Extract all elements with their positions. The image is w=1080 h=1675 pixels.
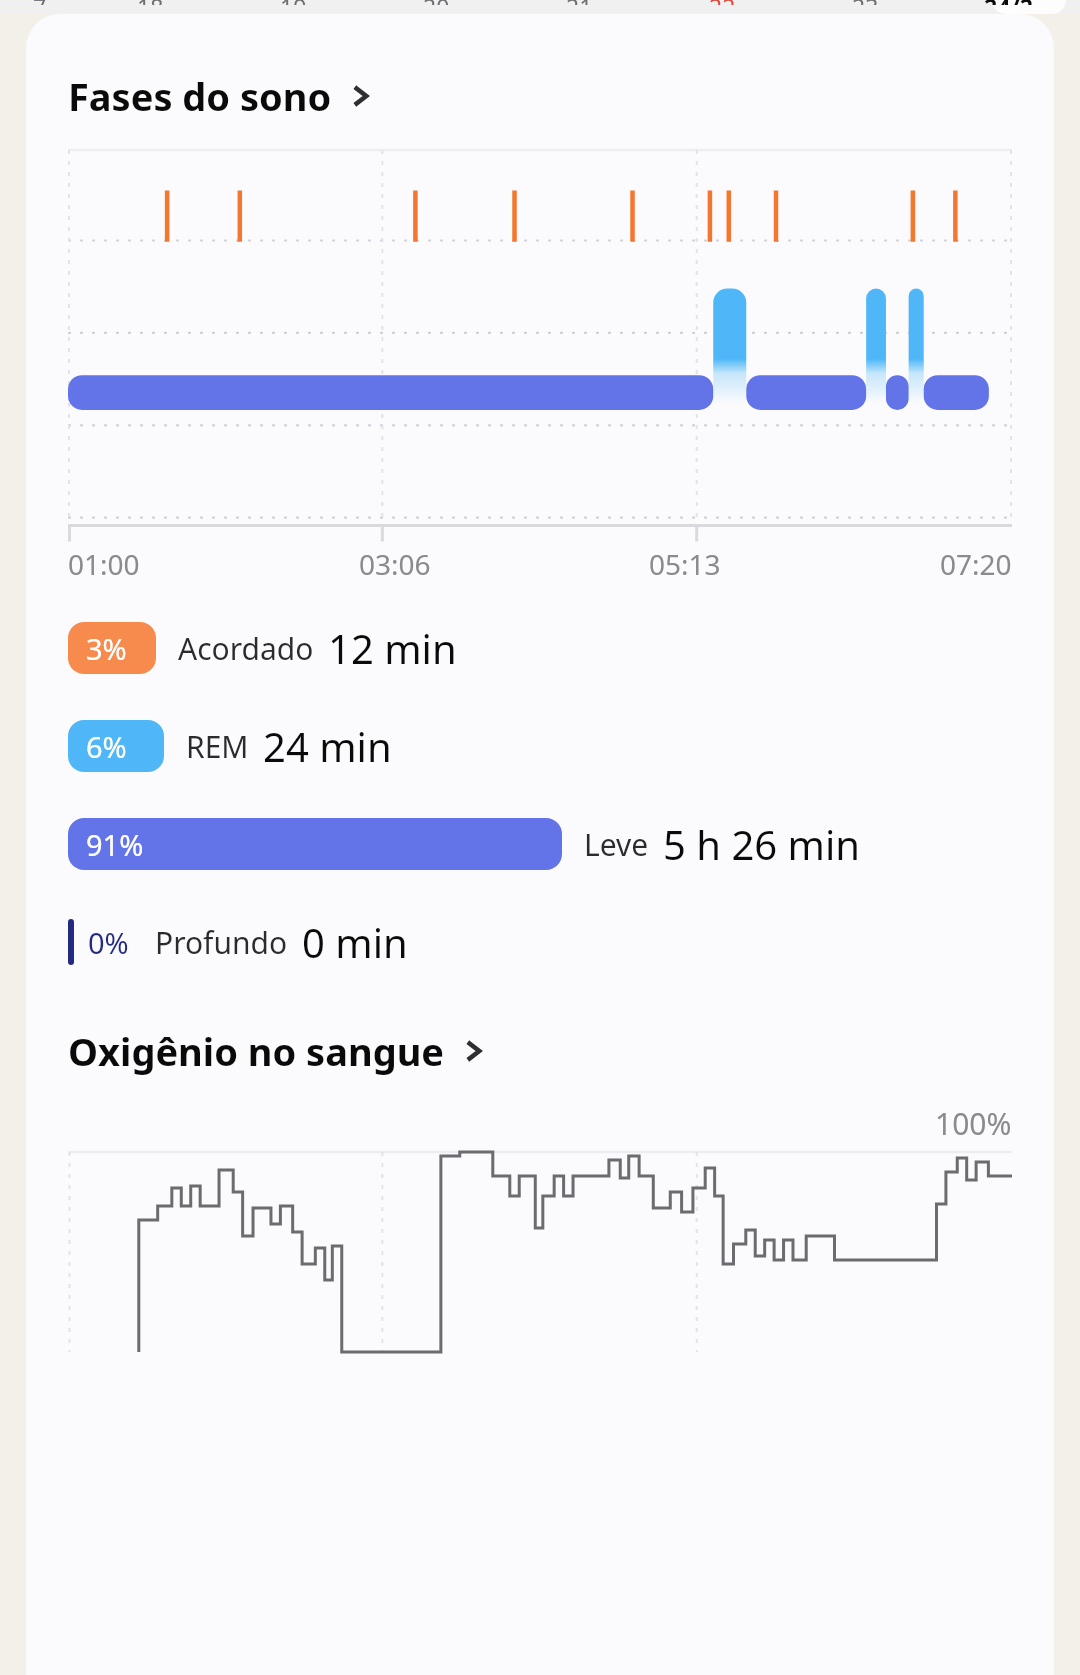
staticText: 07:20 — [940, 545, 1012, 583]
staticText: 01:00 — [68, 545, 140, 583]
button[interactable]: 6% — [68, 719, 1012, 773]
staticText: 24 min — [263, 719, 392, 773]
button[interactable]: 23 — [794, 0, 937, 14]
button[interactable]: Fases do sono — [26, 66, 1054, 126]
button[interactable]: 20 — [365, 0, 508, 14]
staticText: 23 — [852, 0, 879, 5]
staticText: 21 — [566, 0, 593, 5]
button[interactable]: 24/2 — [937, 0, 1080, 14]
button[interactable]: 22 — [651, 0, 794, 14]
button[interactable]: 19 — [222, 0, 365, 14]
staticText: 03:06 — [359, 545, 431, 583]
button[interactable]: Oxigênio no sangue — [26, 1021, 1054, 1081]
button[interactable]: 0% — [68, 915, 1012, 969]
staticText: 0 min — [302, 915, 408, 969]
staticText: 24/2 — [984, 0, 1034, 5]
staticText: REM — [186, 726, 249, 767]
staticText: Acordado — [178, 628, 314, 669]
staticText: Oxigênio no sangue — [68, 1025, 445, 1077]
staticText: 0% — [88, 923, 129, 962]
button[interactable]: 91% — [68, 817, 1012, 871]
button[interactable]: 7 — [0, 0, 79, 14]
staticText: 12 min — [328, 621, 457, 675]
staticText: 22 — [709, 0, 736, 5]
staticText: 91% — [86, 825, 144, 864]
staticText: 5 h 26 min — [663, 817, 860, 871]
staticText: 100% — [935, 1103, 1012, 1144]
button[interactable]: 3% — [68, 621, 1012, 675]
staticText: Fases do sono — [68, 70, 332, 122]
staticText: 05:13 — [649, 545, 721, 583]
staticText: 3% — [86, 629, 127, 668]
staticText: 6% — [86, 727, 127, 766]
staticText: Leve — [584, 824, 649, 865]
button[interactable]: 21 — [508, 0, 651, 14]
button[interactable]: 18 — [79, 0, 222, 14]
staticText: 19 — [280, 0, 307, 5]
staticText: Profundo — [155, 922, 288, 963]
staticText: 18 — [137, 0, 164, 5]
staticText: 20 — [423, 0, 450, 5]
staticText: 7 — [33, 0, 47, 5]
